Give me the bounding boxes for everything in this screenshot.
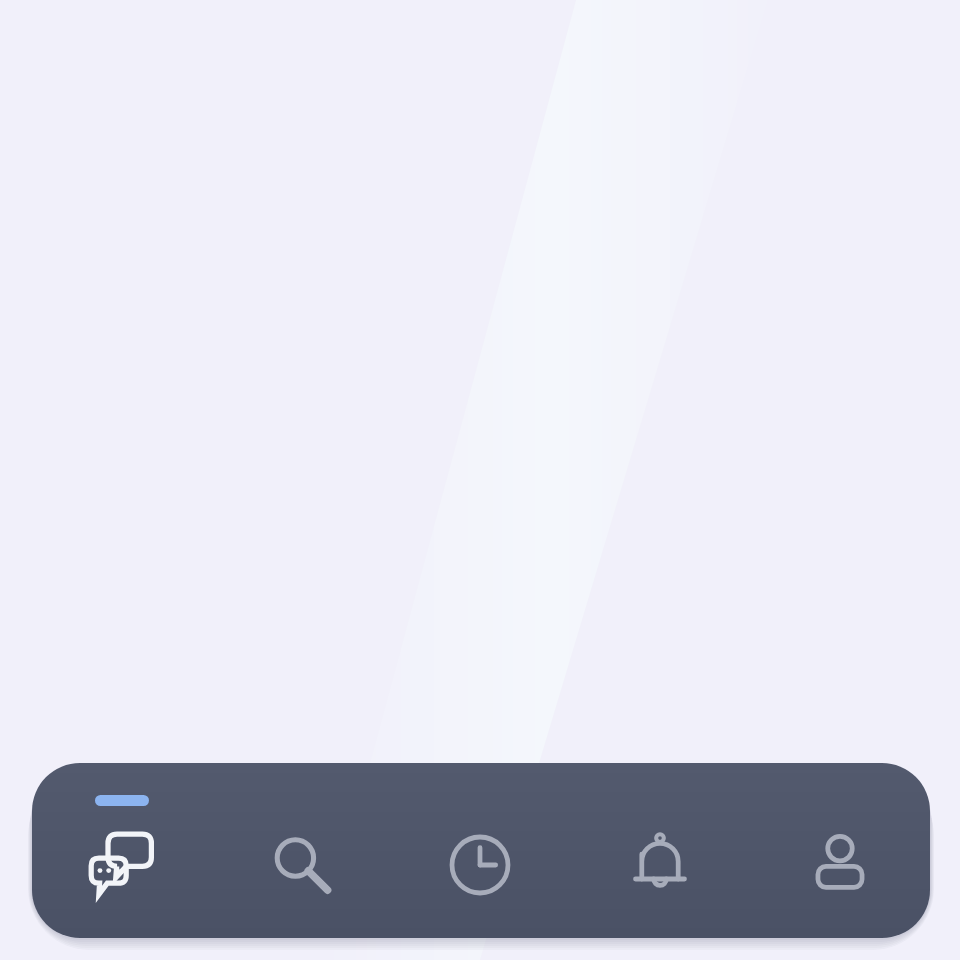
button[interactable]: Recent [390,763,570,938]
button[interactable]: Profile [750,763,930,938]
button[interactable]: Chats [32,763,211,938]
button[interactable]: Notifications [570,763,750,938]
button[interactable]: Search [211,763,390,938]
